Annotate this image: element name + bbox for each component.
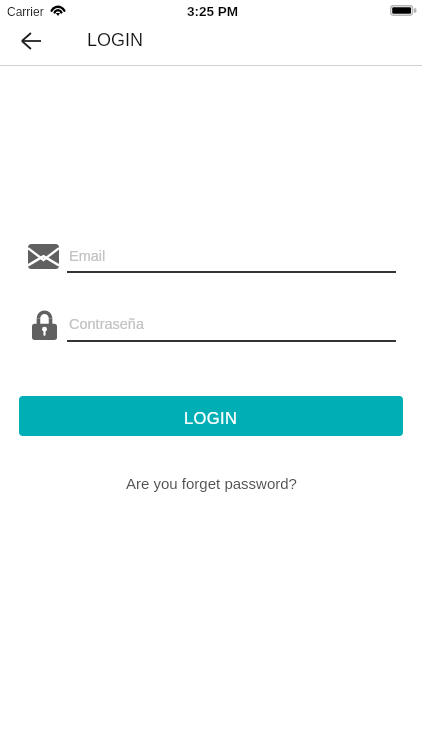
staticText: Carrier — [7, 5, 44, 18]
button[interactable]: LOGIN — [19, 396, 403, 436]
staticText: Contraseña — [69, 316, 144, 332]
button[interactable]: Contraseña — [67, 310, 396, 342]
staticText: LOGIN — [87, 30, 144, 50]
button[interactable]: Back — [10, 20, 52, 62]
staticText: LOGIN — [184, 409, 238, 427]
staticText: Email — [69, 248, 106, 264]
staticText: Are you forget password? — [126, 475, 297, 492]
button[interactable]: Email — [67, 244, 396, 276]
button[interactable]: Are you forget password? — [0, 471, 422, 495]
staticText: 3:25 PM — [187, 4, 239, 19]
